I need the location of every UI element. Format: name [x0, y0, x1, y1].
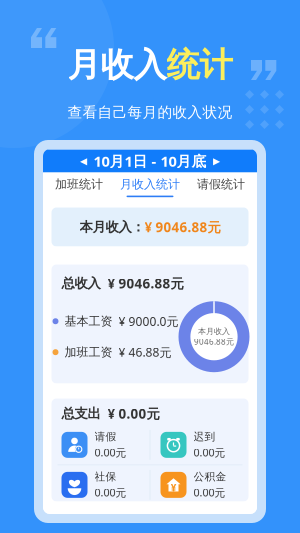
- staticText: 0.00元: [94, 445, 126, 459]
- staticText: 社保: [94, 470, 116, 483]
- staticText: 月收入: [67, 44, 166, 85]
- staticText: 本月收入：: [79, 219, 144, 235]
- staticText: ¥ 9000.0元: [118, 313, 178, 329]
- staticText: 9046.88元: [194, 336, 234, 347]
- button[interactable]: 加班统计: [43, 172, 114, 201]
- staticText: 公积金: [193, 470, 226, 483]
- staticText: 统计: [166, 44, 232, 85]
- staticText: ◀: [80, 156, 87, 166]
- staticText: 月收入统计: [120, 177, 180, 191]
- staticText: 总支出: [61, 405, 100, 422]
- staticText: 0.00元: [94, 485, 126, 499]
- button[interactable]: 请假: [51, 426, 149, 464]
- staticText: 查看自己每月的收入状况: [67, 103, 232, 121]
- staticText: 基本工资: [64, 314, 112, 329]
- button[interactable]: ¥: [150, 466, 248, 504]
- staticText: ¥ 9046.88元: [144, 218, 220, 236]
- staticText: 加班统计: [55, 177, 103, 191]
- button[interactable]: 上一月: [73, 149, 93, 172]
- staticText: ¥ 46.88元: [118, 344, 171, 360]
- staticText: 总收入: [61, 275, 100, 292]
- button[interactable]: 社保: [51, 466, 149, 504]
- staticText: 请假: [94, 430, 116, 443]
- staticText: ¥ 0.00元: [107, 405, 159, 422]
- staticText: 0.00元: [193, 485, 225, 499]
- button[interactable]: 月收入统计: [114, 172, 185, 201]
- staticText: 请假统计: [197, 177, 245, 191]
- staticText: ▶: [213, 156, 220, 166]
- staticText: 10月1日 - 10月底: [93, 151, 206, 171]
- staticText: 迟到: [193, 430, 215, 443]
- staticText: ¥ 9046.88元: [107, 274, 183, 292]
- button[interactable]: 请假统计: [185, 172, 256, 201]
- staticText: 0.00元: [193, 445, 225, 459]
- button[interactable]: 下一月: [206, 149, 226, 172]
- staticText: 本月收入: [198, 326, 230, 336]
- staticText: 加班工资: [64, 345, 112, 359]
- button[interactable]: 迟到: [150, 426, 248, 464]
- staticText: ¥: [170, 480, 176, 495]
